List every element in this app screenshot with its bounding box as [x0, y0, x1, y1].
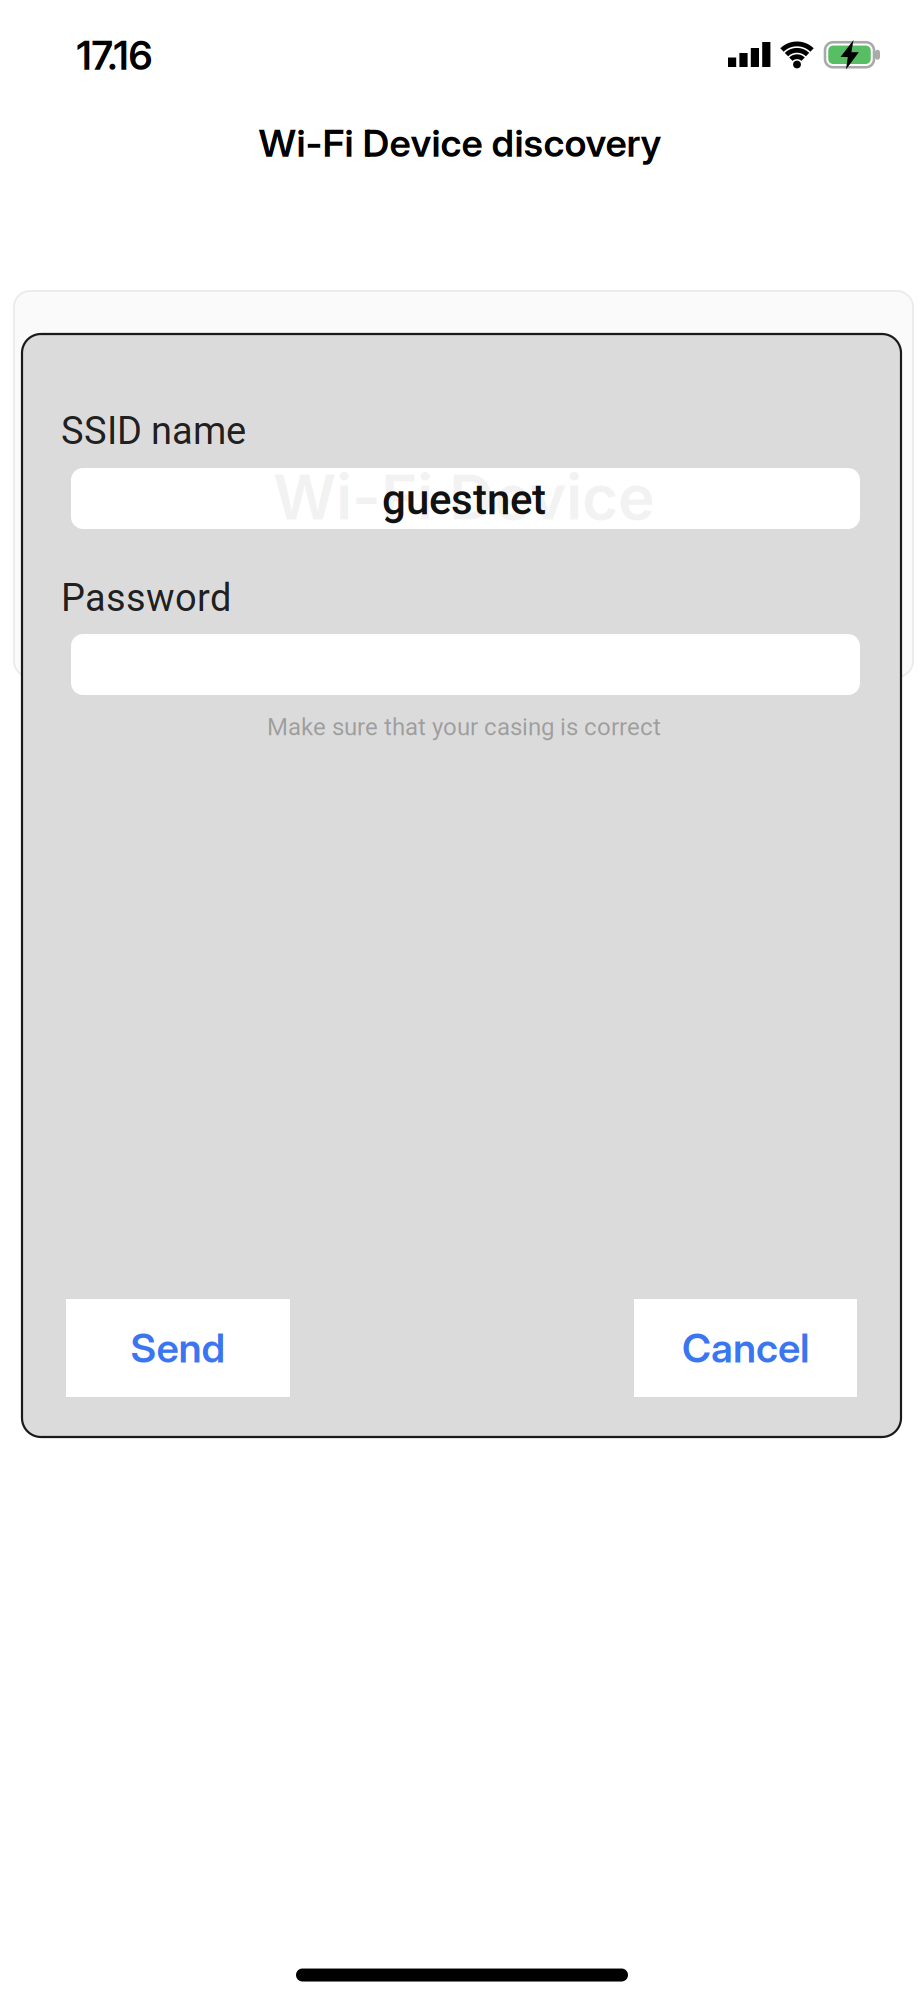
staticText: Send [130, 1324, 225, 1372]
staticText: Wi-Fi Device [273, 459, 655, 534]
staticText: guestnet [382, 475, 546, 525]
staticText: 17.16 [76, 32, 152, 79]
staticText: Make sure that your casing is correct [267, 713, 661, 741]
button[interactable]: Cancel [634, 1299, 857, 1397]
staticText: Password [61, 576, 231, 620]
staticText: Wi-Fi Device discovery [258, 120, 661, 166]
staticText: SSID name [61, 409, 246, 453]
button[interactable]: Send [66, 1299, 290, 1397]
staticText: Cancel [682, 1324, 809, 1372]
